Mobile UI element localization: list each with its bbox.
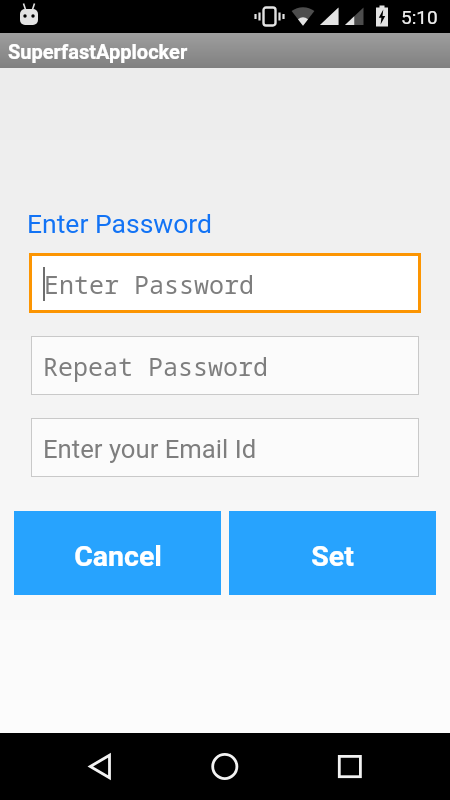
staticText: Set <box>311 540 354 573</box>
staticText: SuperfastApplocker <box>8 40 188 63</box>
button[interactable]: Enter Password <box>29 253 421 313</box>
staticText: Enter Password <box>27 208 213 239</box>
staticText: Enter your Email Id <box>43 434 257 464</box>
button[interactable]: Recent apps <box>322 739 378 795</box>
button[interactable]: Back <box>72 739 128 795</box>
staticText: Repeat Password <box>43 349 269 383</box>
button[interactable]: Set <box>229 511 436 595</box>
button[interactable]: Enter your Email Id <box>31 418 419 477</box>
button[interactable]: Home <box>197 739 253 795</box>
button[interactable]: Cancel <box>14 511 221 595</box>
staticText: 5:10 <box>401 6 438 28</box>
staticText: Cancel <box>74 540 162 573</box>
button[interactable]: Repeat Password <box>31 336 419 395</box>
staticText: Enter Password <box>44 267 255 301</box>
